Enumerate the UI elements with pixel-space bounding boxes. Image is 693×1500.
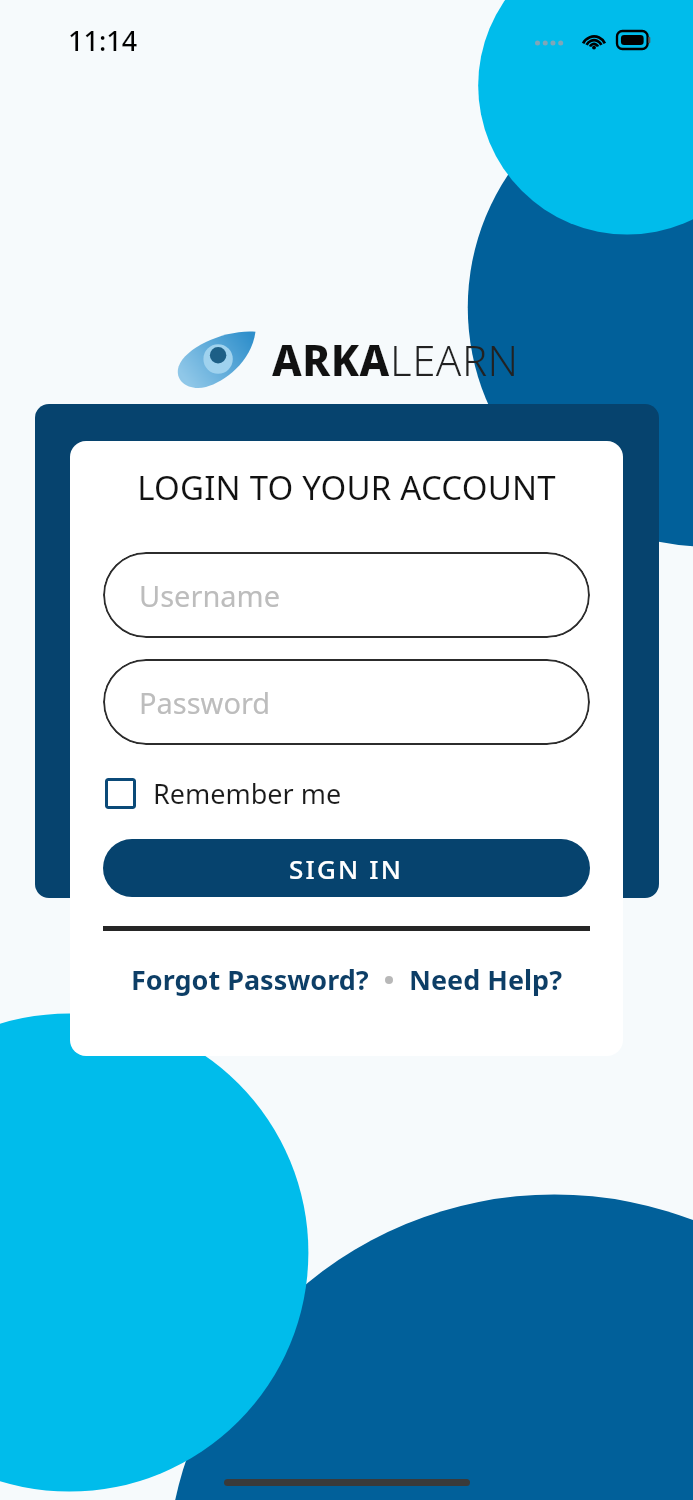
button[interactable]: Username	[103, 552, 590, 638]
staticText: Remember me	[153, 775, 342, 812]
staticText: ARKA	[272, 331, 390, 388]
button[interactable]: Password	[103, 659, 590, 745]
button[interactable]: Need Help?	[407, 957, 565, 1002]
button[interactable]: Remember me	[103, 771, 344, 816]
staticText: LOGIN TO YOUR ACCOUNT	[103, 465, 590, 510]
staticText: SIGN IN	[289, 851, 404, 886]
staticText: Username	[139, 576, 281, 615]
button[interactable]: Forgot Password?	[129, 957, 371, 1002]
staticText: Need Help?	[409, 961, 563, 998]
staticText: Password	[139, 683, 271, 722]
staticText: Forgot Password?	[131, 961, 369, 998]
staticText: LEARN	[390, 331, 519, 388]
button[interactable]: SIGN IN	[103, 839, 590, 897]
staticText: 11:14	[68, 22, 138, 59]
